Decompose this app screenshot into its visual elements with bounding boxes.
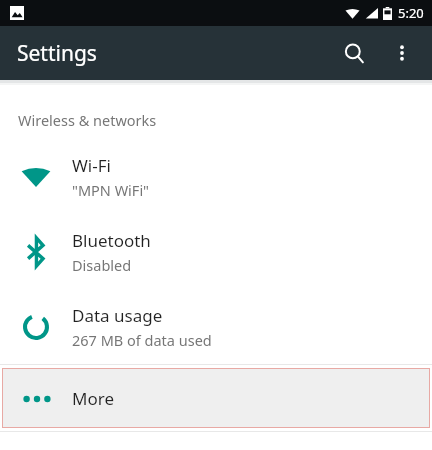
staticText: Wireless & networks — [18, 110, 157, 130]
staticText: "MPN WiFi" — [72, 180, 150, 200]
button[interactable]: More — [2, 368, 430, 428]
button[interactable]: Bluetooth — [0, 214, 432, 289]
staticText: 5:20 — [398, 4, 424, 22]
button[interactable]: Wi-Fi — [0, 139, 432, 214]
staticText: Wi-Fi — [72, 154, 111, 177]
button[interactable]: Data usage — [0, 289, 432, 364]
staticText: Data usage — [72, 304, 163, 327]
button[interactable]: More options — [378, 29, 426, 77]
staticText: Settings — [17, 39, 97, 68]
staticText: Disabled — [72, 255, 132, 275]
staticText: Bluetooth — [72, 229, 151, 252]
button[interactable]: Search — [330, 29, 378, 77]
staticText: More — [72, 387, 114, 410]
staticText: 267 MB of data used — [72, 330, 212, 350]
